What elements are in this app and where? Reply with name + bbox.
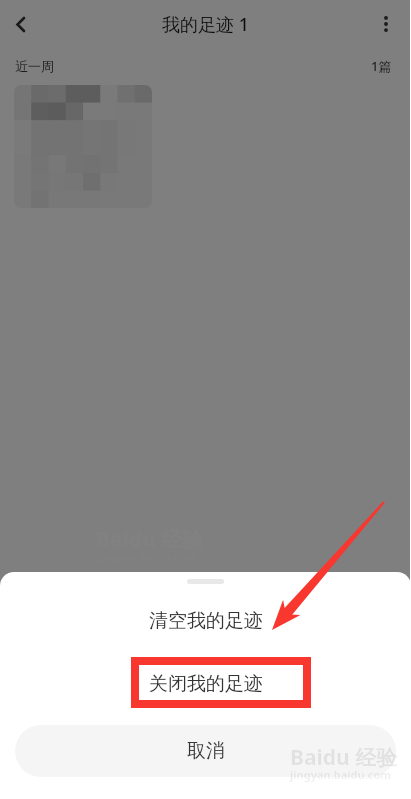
staticText: 1篇 xyxy=(371,57,392,75)
button[interactable]: 取消 xyxy=(15,725,396,777)
button[interactable]: More options xyxy=(364,2,408,46)
staticText: jingyan.baidu.com xyxy=(290,767,392,782)
button[interactable]: Back xyxy=(0,2,44,46)
staticText: 清空我的足迹 xyxy=(149,609,263,633)
staticText: 关闭我的足迹 xyxy=(149,672,263,696)
button[interactable]: 清空我的足迹 xyxy=(0,595,411,647)
staticText: 取消 xyxy=(187,739,225,763)
staticText: Baidu 经验 xyxy=(290,743,398,772)
staticText: 我的足迹 1 xyxy=(162,12,249,37)
staticText: 近一周 xyxy=(15,58,54,74)
button[interactable]: 关闭我的足迹 xyxy=(0,658,411,710)
